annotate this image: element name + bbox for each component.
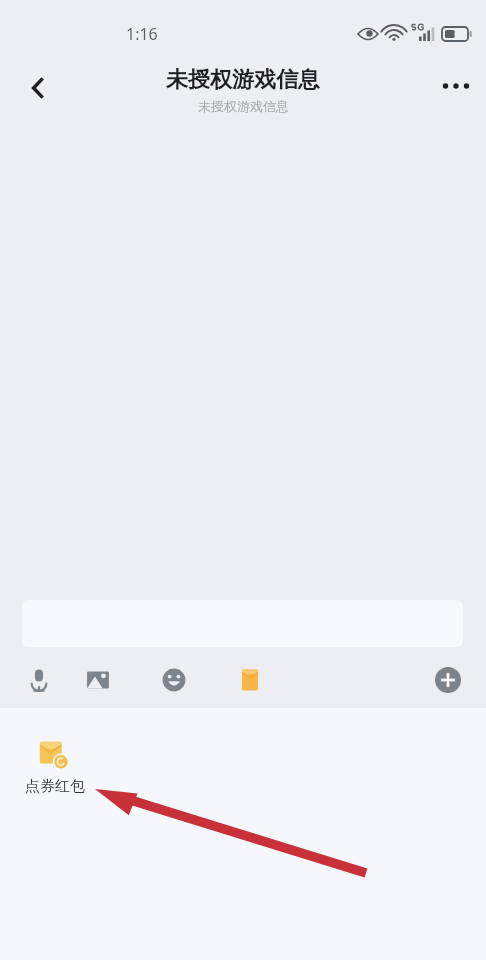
staticText: 点券红包 — [22, 777, 88, 796]
staticText: 未授权游戏信息 — [166, 66, 320, 94]
button[interactable]: More options — [432, 62, 480, 110]
staticText: 未授权游戏信息 — [198, 98, 289, 114]
button[interactable]: 点券红包 — [22, 738, 88, 796]
button[interactable]: Back — [14, 64, 62, 112]
button[interactable]: Voice message — [18, 659, 60, 701]
button[interactable]: Photo — [77, 659, 119, 701]
staticText: 1:16 — [126, 23, 158, 45]
button[interactable]: Red packet — [229, 659, 271, 701]
button[interactable]: More functions — [428, 660, 468, 700]
button[interactable]: Emoji — [153, 659, 195, 701]
